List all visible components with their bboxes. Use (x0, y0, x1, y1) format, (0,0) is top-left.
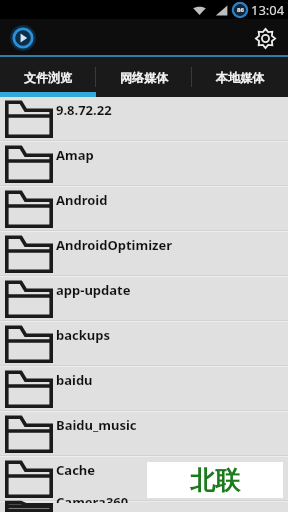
staticText: Baidu_music (56, 416, 137, 434)
staticText: 本地媒体 (216, 70, 264, 85)
button[interactable]: Camera360 (0, 502, 288, 512)
staticText: 网络媒体 (120, 70, 168, 85)
button[interactable]: baidu (0, 367, 288, 412)
button[interactable]: Amap (0, 142, 288, 187)
staticText: 文件浏览 (24, 70, 72, 85)
button[interactable]: Android (0, 187, 288, 232)
staticText: Cache (56, 461, 96, 479)
staticText: 北联 (190, 465, 240, 496)
button[interactable]: 文件浏览 (0, 57, 96, 97)
button[interactable]: 本地媒体 (192, 57, 288, 97)
button[interactable]: AndroidOptimizer (0, 232, 288, 277)
staticText: 9.8.72.22 (56, 101, 112, 119)
staticText: 86 (237, 6, 244, 14)
button[interactable]: Settings (250, 23, 280, 53)
button[interactable]: Player logo (8, 23, 38, 53)
button[interactable]: backups (0, 322, 288, 367)
staticText: backups (56, 326, 110, 344)
button[interactable]: app-update (0, 277, 288, 322)
staticText: 13:04 (251, 1, 285, 19)
staticText: app-update (56, 281, 131, 299)
button[interactable]: 9.8.72.22 (0, 97, 288, 142)
button[interactable]: 网络媒体 (96, 57, 192, 97)
staticText: AndroidOptimizer (56, 236, 173, 254)
button[interactable]: Baidu_music (0, 412, 288, 457)
staticText: Amap (56, 146, 94, 164)
staticText: baidu (56, 371, 93, 389)
button[interactable]: Cache (0, 457, 288, 502)
staticText: Android (56, 191, 108, 209)
staticText: Camera360 (56, 493, 129, 503)
